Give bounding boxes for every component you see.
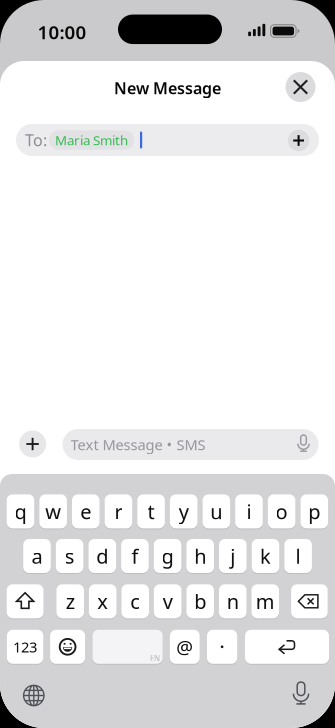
staticText: x — [97, 588, 108, 615]
button[interactable]: Numbers — [7, 629, 43, 665]
button[interactable]: Apps — [19, 430, 46, 457]
button[interactable]: d — [88, 538, 116, 574]
staticText: z — [66, 588, 75, 615]
button[interactable]: h — [186, 538, 214, 574]
staticText: l — [296, 543, 301, 569]
staticText: Maria Smith — [55, 131, 128, 149]
staticText: n — [227, 588, 239, 615]
button[interactable]: v — [154, 583, 181, 619]
staticText: e — [80, 498, 91, 525]
button[interactable]: l — [284, 538, 312, 574]
staticText: h — [194, 543, 206, 569]
button[interactable]: f — [121, 538, 149, 574]
staticText: f — [131, 543, 138, 569]
button[interactable]: e — [72, 493, 100, 529]
button[interactable]: s — [56, 538, 83, 574]
button[interactable]: t — [137, 493, 165, 529]
button[interactable]: @ — [170, 629, 200, 665]
staticText: c — [130, 588, 140, 615]
staticText: 10:00 — [37, 20, 86, 44]
button[interactable]: z — [56, 583, 84, 619]
button[interactable]: Dictate — [294, 433, 312, 455]
staticText: j — [230, 543, 235, 569]
staticText: a — [31, 543, 42, 569]
button[interactable]: Next keyboard — [22, 683, 46, 707]
staticText: o — [276, 498, 288, 525]
staticText: b — [194, 588, 206, 615]
button[interactable]: x — [89, 583, 116, 619]
staticText: q — [14, 498, 26, 525]
staticText: New Message — [114, 77, 221, 99]
button[interactable]: w — [39, 493, 67, 529]
staticText: Text Message • SMS — [70, 435, 205, 454]
button[interactable]: c — [121, 583, 149, 619]
staticText: 123 — [13, 637, 37, 657]
staticText: d — [96, 543, 108, 569]
staticText: w — [45, 498, 61, 525]
button[interactable]: g — [154, 538, 181, 574]
button[interactable]: p — [300, 493, 328, 529]
staticText: EN — [150, 653, 160, 664]
staticText: s — [65, 543, 75, 569]
staticText: i — [246, 498, 251, 525]
button[interactable]: . — [207, 629, 237, 665]
button[interactable]: n — [219, 583, 246, 619]
button[interactable]: k — [252, 538, 279, 574]
staticText: t — [148, 498, 155, 525]
staticText: g — [162, 543, 174, 569]
button[interactable]: Delete — [291, 583, 328, 619]
staticText: To: — [25, 129, 47, 151]
button[interactable]: Add Contact — [288, 130, 309, 151]
button[interactable]: Return — [245, 629, 329, 665]
button[interactable]: a — [23, 538, 51, 574]
staticText: m — [256, 588, 275, 615]
button[interactable]: i — [235, 493, 263, 529]
button[interactable]: Text Message — [62, 429, 318, 460]
button[interactable]: m — [251, 583, 279, 619]
staticText: k — [260, 543, 271, 569]
staticText: u — [210, 498, 222, 525]
button[interactable]: y — [170, 493, 197, 529]
button[interactable]: b — [186, 583, 214, 619]
button[interactable]: u — [202, 493, 230, 529]
button[interactable]: q — [7, 493, 34, 529]
staticText: p — [308, 498, 320, 525]
button[interactable]: r — [105, 493, 132, 529]
button[interactable]: Close — [285, 72, 315, 102]
button[interactable]: o — [268, 493, 295, 529]
button[interactable]: Emoji — [50, 629, 85, 665]
button[interactable]: Dictation — [290, 681, 312, 707]
staticText: @ — [176, 634, 193, 659]
button[interactable]: Shift — [7, 583, 43, 619]
button[interactable]: j — [219, 538, 247, 574]
button[interactable]: Space — [92, 629, 163, 665]
button[interactable]: To: Maria Smith — [16, 124, 319, 156]
staticText: r — [114, 498, 122, 525]
staticText: v — [163, 588, 173, 615]
staticText: y — [179, 498, 189, 525]
